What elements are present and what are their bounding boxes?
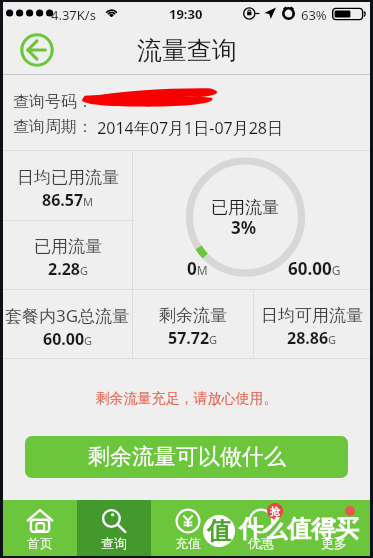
button[interactable]: 首页 [3,500,77,556]
staticText: 首页 [27,535,53,551]
staticText: 0M [187,257,208,280]
staticText: 查询 [101,535,127,551]
staticText: 60.00G [288,257,341,280]
button[interactable]: 优惠 [224,500,297,556]
staticText: 流量查询 [137,35,237,66]
button[interactable]: 查询 [77,500,151,556]
staticText: 查询号码： [13,92,93,112]
staticText: 已用流量 [34,236,102,257]
button[interactable]: Back [20,33,54,67]
button[interactable]: 充值 [151,500,224,556]
staticText: 已用流量 [211,197,279,218]
staticText: 剩余流量充足，请放心使用。 [3,390,370,408]
staticText: 3% [231,216,257,239]
staticText: 28.86G [287,327,337,349]
staticText: 日均已用流量 [17,167,119,188]
staticText: 优惠 [248,535,274,551]
staticText: 充值 [175,535,201,551]
staticText: 日均可用流量 [261,305,363,326]
staticText: 2014年07月1日-07月28日 [93,117,283,139]
staticText: 剩余流量可以做什么 [88,443,286,471]
button[interactable]: 更多 [297,500,370,556]
staticText: 抢 [270,505,280,518]
staticText: 60.00G [43,328,93,350]
staticText: 查询周期： [13,117,93,137]
staticText: 57.72G [168,327,218,349]
staticText: 值 [207,516,231,546]
staticText: 86.57M [42,189,94,211]
staticText: 什么值得买 [239,514,359,544]
staticText: 2.28G [48,258,88,280]
staticText: 63% [301,6,327,24]
staticText: 4.37K/s [51,6,96,24]
staticText: 更多 [321,535,347,551]
staticText: 19:30 [169,5,203,23]
staticText: 套餐内3G总流量 [5,304,130,327]
button[interactable]: 剩余流量可以做什么 [25,436,348,478]
staticText: 剩余流量 [159,305,227,326]
